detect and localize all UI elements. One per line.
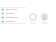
button[interactable] (0, 19, 27, 23)
button[interactable] (0, 15, 27, 19)
button[interactable]: Item (40, 13, 48, 23)
button[interactable] (0, 11, 27, 15)
button[interactable]: Item (29, 13, 37, 23)
button[interactable] (0, 7, 27, 11)
